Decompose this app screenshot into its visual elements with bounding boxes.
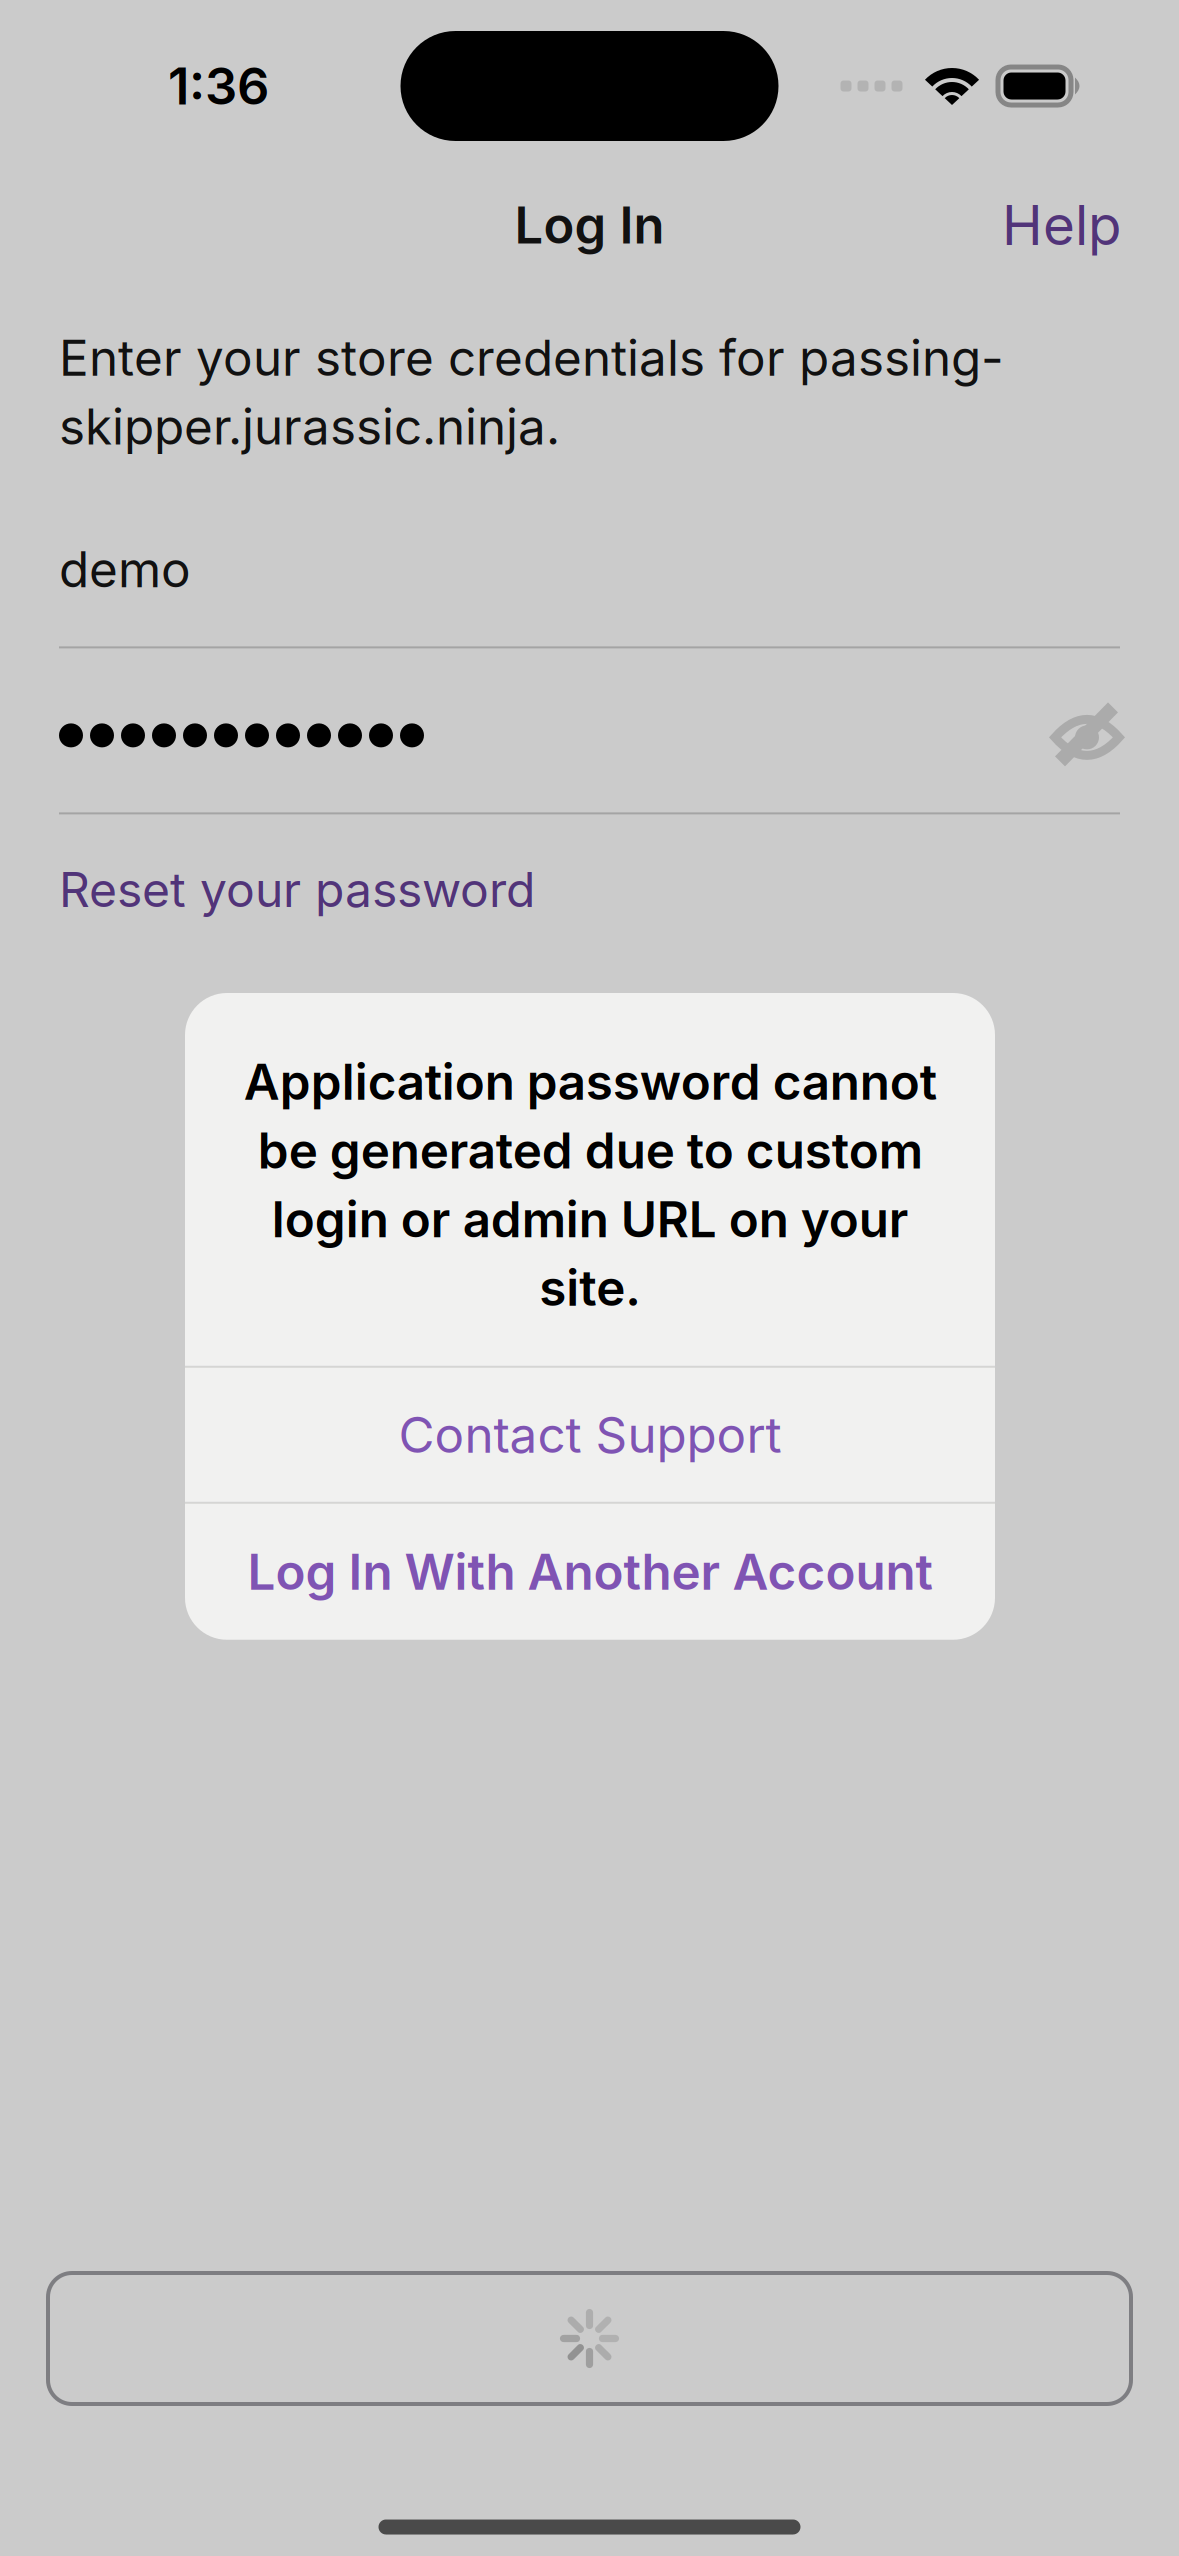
button[interactable]: Reset your password xyxy=(59,838,535,940)
staticText: Application password cannot be generated… xyxy=(243,1052,936,1318)
staticText: Log In xyxy=(514,194,664,256)
button[interactable]: Help xyxy=(982,172,1141,278)
button[interactable] xyxy=(59,648,1054,812)
staticText: Log In With Another Account xyxy=(247,1542,932,1602)
button[interactable]: Contact Support xyxy=(185,1368,995,1502)
button[interactable]: Log In With Another Account xyxy=(185,1504,995,1640)
button[interactable]: Signing in xyxy=(48,2273,1131,2404)
button[interactable]: Show password xyxy=(1054,696,1120,764)
staticText: Enter your store credentials for passing… xyxy=(59,328,1004,456)
staticText: Help xyxy=(1002,192,1121,258)
staticText: Contact Support xyxy=(398,1405,781,1465)
staticText: demo xyxy=(59,539,191,599)
button[interactable]: demo xyxy=(59,515,1120,646)
staticText: Reset your password xyxy=(59,860,535,918)
staticText: 1:36 xyxy=(168,55,269,117)
